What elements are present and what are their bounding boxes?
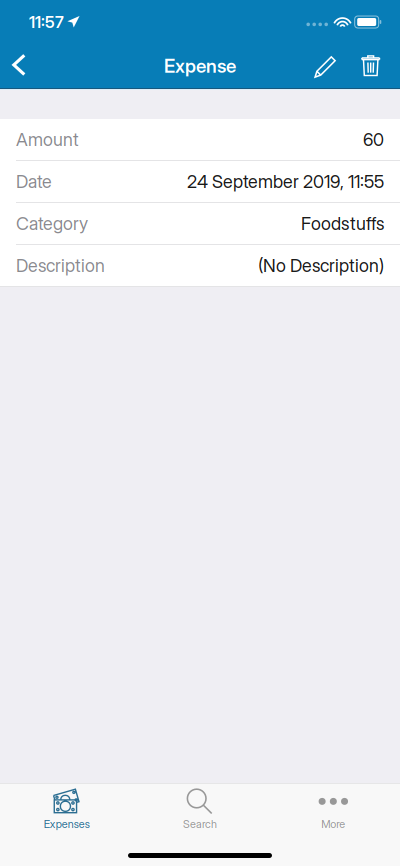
button[interactable]: Search bbox=[133, 783, 267, 833]
staticText: Amount bbox=[16, 129, 79, 150]
staticText: Expenses bbox=[44, 817, 90, 831]
button[interactable]: Delete bbox=[349, 44, 392, 88]
staticText: Search bbox=[183, 817, 217, 831]
staticText: Date bbox=[16, 171, 52, 192]
staticText: Description bbox=[16, 255, 105, 276]
staticText: Expense bbox=[164, 55, 236, 77]
staticText: More bbox=[321, 817, 345, 831]
staticText: Foodstuffs bbox=[301, 213, 384, 234]
staticText: 24 September 2019, 11:55 bbox=[187, 171, 384, 192]
staticText: Category bbox=[16, 213, 88, 234]
staticText: 11:57 bbox=[29, 12, 64, 32]
staticText: 60 bbox=[363, 129, 384, 150]
staticText: (No Description) bbox=[258, 255, 384, 276]
button[interactable]: Edit bbox=[302, 44, 349, 88]
button[interactable]: Expenses bbox=[0, 783, 133, 833]
button[interactable]: More bbox=[267, 783, 400, 833]
button[interactable]: Back bbox=[0, 44, 40, 88]
